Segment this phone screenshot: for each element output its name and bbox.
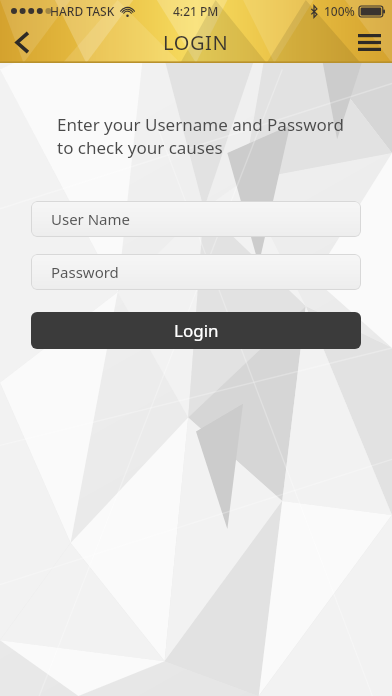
staticText: Password xyxy=(51,262,119,282)
staticText: Login xyxy=(174,319,219,342)
staticText: 4:21 PM xyxy=(173,3,219,19)
staticText: 100% xyxy=(324,3,355,19)
staticText: User Name xyxy=(51,209,131,229)
button[interactable]: Login xyxy=(31,312,361,349)
button[interactable]: User Name xyxy=(31,201,361,237)
staticText: LOGIN xyxy=(163,29,229,56)
button[interactable]: Menu xyxy=(346,22,392,63)
button[interactable]: Password xyxy=(31,254,361,290)
button[interactable]: Back xyxy=(0,22,44,63)
staticText: HARD TASK xyxy=(50,3,115,19)
staticText: Enter your Username and Password to chec… xyxy=(57,113,344,159)
